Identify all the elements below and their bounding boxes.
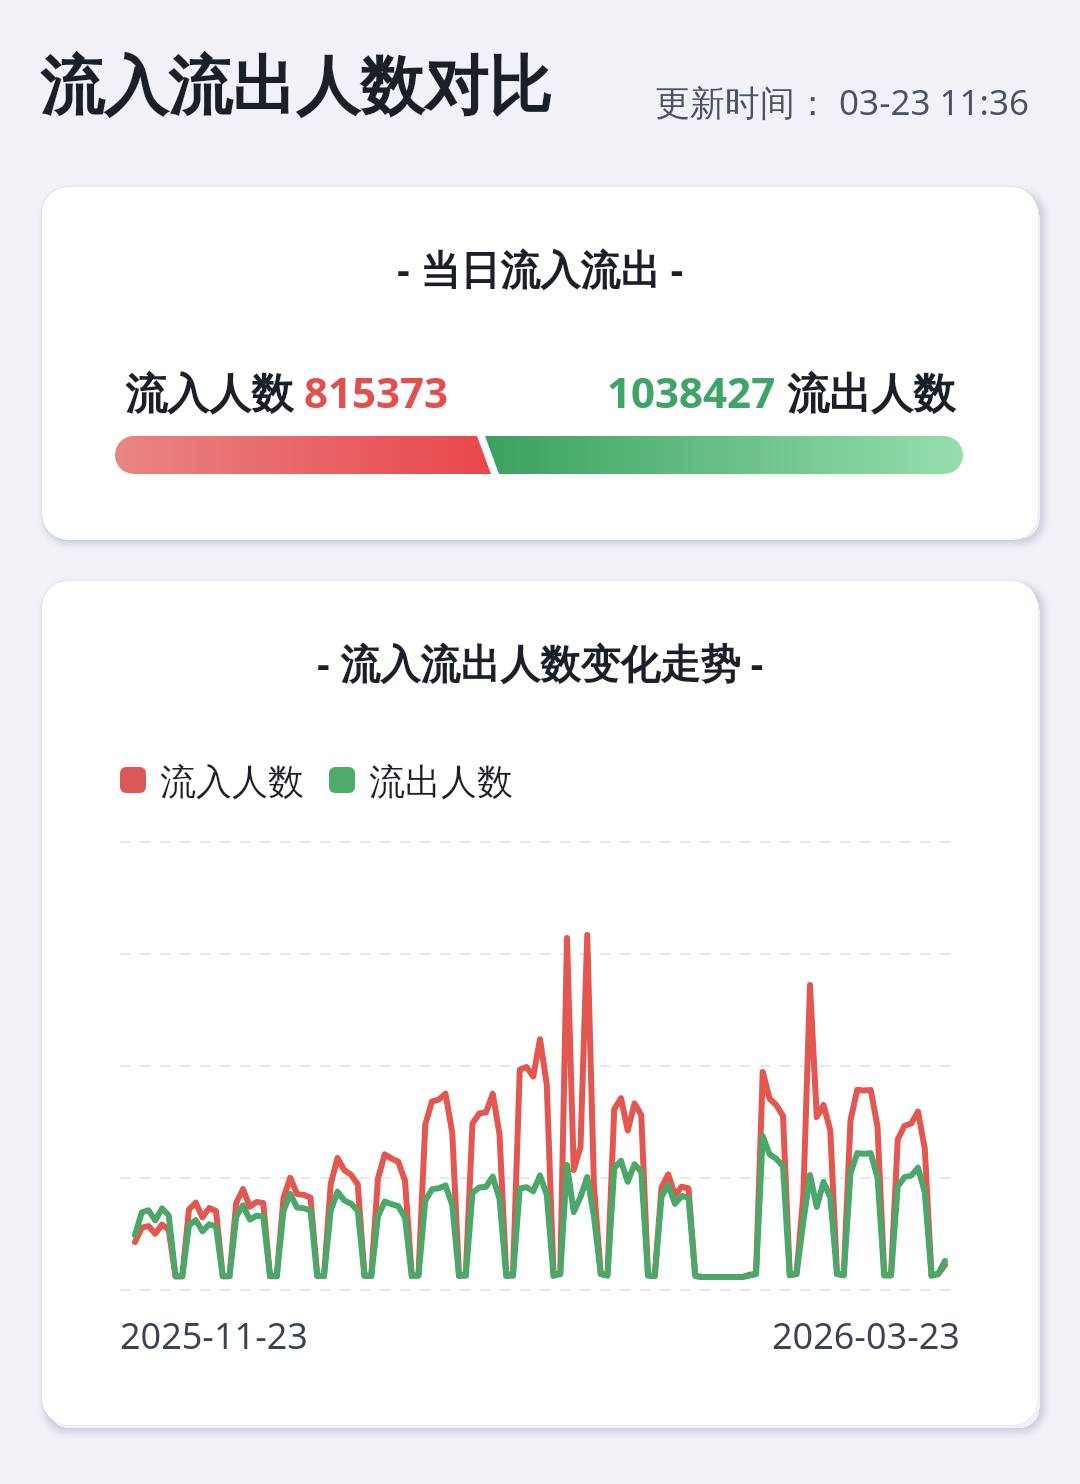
button[interactable]: - 当日流入流出 - [42, 187, 1038, 540]
staticText: - 流入流出人数变化走势 - [317, 635, 764, 690]
staticText: 2026-03-23 [772, 1311, 960, 1360]
staticText: - 当日流入流出 - [397, 241, 684, 296]
staticText: 1038427 [607, 363, 776, 420]
staticText: 流入人数 [125, 363, 304, 420]
staticText: 流入流出人数对比 [40, 46, 552, 127]
staticText: 2025-11-23 [120, 1311, 308, 1360]
staticText: 更新时间： 03-23 11:36 [655, 78, 1030, 126]
staticText: 815373 [304, 363, 449, 420]
staticText: 流入人数 [160, 759, 304, 804]
staticText: 流出人数 [369, 759, 513, 804]
staticText: 流出人数 [776, 363, 955, 420]
button[interactable]: - 流入流出人数变化走势 - [42, 581, 1038, 1425]
